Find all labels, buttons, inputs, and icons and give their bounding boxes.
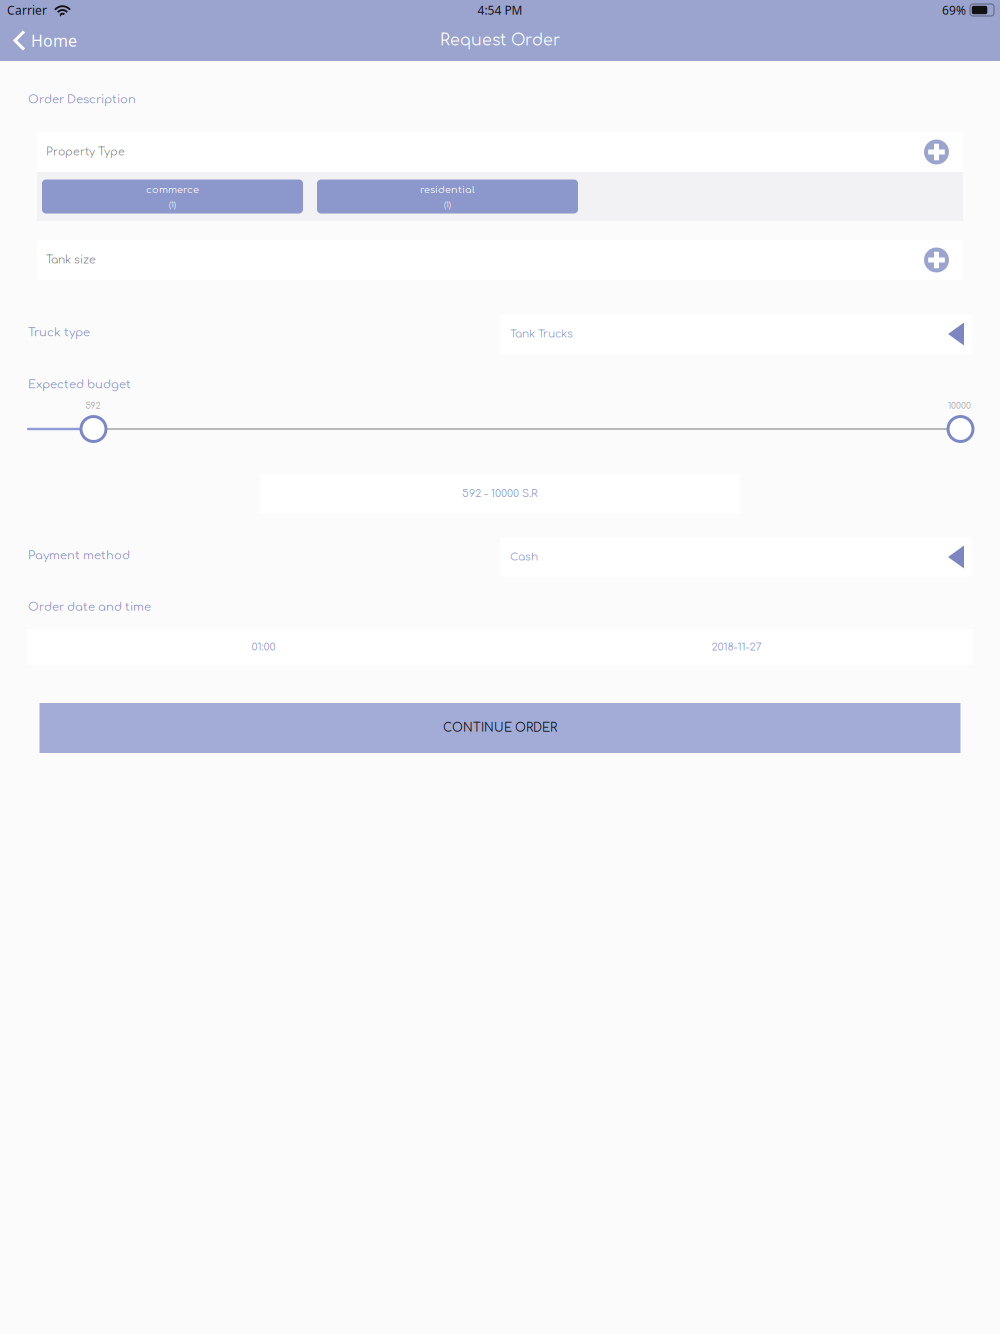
button[interactable]: commerce bbox=[42, 179, 303, 213]
button[interactable]: Add Property Type bbox=[924, 139, 949, 164]
staticText: Carrier bbox=[7, 2, 47, 18]
button[interactable]: residential bbox=[317, 179, 578, 213]
button[interactable]: 2018-11-27 bbox=[500, 629, 973, 665]
button[interactable]: 01:00 bbox=[27, 629, 500, 665]
staticText: Home bbox=[31, 30, 77, 51]
staticText: Order Description bbox=[28, 93, 136, 106]
button[interactable]: Tank Trucks bbox=[500, 314, 972, 353]
button[interactable]: Add Tank size bbox=[924, 247, 949, 272]
staticText: Tank size bbox=[46, 254, 96, 266]
staticText: 69% bbox=[942, 2, 966, 18]
staticText: Property Type bbox=[46, 146, 125, 158]
staticText: 592 - 10000 S.R bbox=[462, 488, 538, 499]
staticText: Payment method bbox=[28, 549, 130, 562]
staticText: 2018-11-27 bbox=[711, 641, 761, 653]
staticText: (1) bbox=[169, 201, 176, 209]
staticText: commerce bbox=[146, 185, 199, 195]
staticText: Truck type bbox=[28, 326, 90, 339]
staticText: (1) bbox=[444, 201, 451, 209]
staticText: 10000 bbox=[948, 401, 971, 411]
staticText: Tank Trucks bbox=[510, 328, 573, 340]
staticText: Cash bbox=[510, 551, 538, 563]
button[interactable]: CONTINUE ORDER bbox=[39, 703, 960, 753]
staticText: 01:00 bbox=[251, 641, 275, 653]
staticText: Request Order bbox=[440, 32, 560, 49]
button[interactable]: Cash bbox=[500, 537, 972, 576]
staticText: Expected budget bbox=[28, 378, 131, 391]
staticText: CONTINUE ORDER bbox=[443, 721, 557, 735]
staticText: residential bbox=[420, 185, 475, 195]
button[interactable]: Home bbox=[0, 20, 87, 61]
staticText: 592 bbox=[85, 401, 100, 411]
staticText: Order date and time bbox=[28, 601, 151, 613]
staticText: 4:54 PM bbox=[477, 2, 522, 18]
